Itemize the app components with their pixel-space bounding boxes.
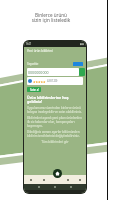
button[interactable]: Nav 3	[62, 175, 74, 184]
staticText: ★★★★★	[33, 80, 46, 83]
button[interactable]: Nav 2	[50, 175, 62, 184]
staticText: 9:41	[26, 42, 32, 46]
button[interactable]: Nav 1	[37, 175, 50, 184]
staticText: 0000000000	[28, 70, 49, 75]
button[interactable]: Home	[53, 169, 62, 178]
staticText: Uygulamamız üzerinden binlerce ürünü kol…	[27, 106, 83, 114]
staticText: Yeni ürün bildirimi	[27, 49, 53, 53]
staticText: Ürün bildirimlerine hoş geldiniz!	[27, 95, 69, 104]
staticText: Bildirimleri açarak yeni çıkan ürünlerde…	[27, 116, 83, 128]
staticText: Binlerce ürünü sizin için listeledik	[29, 12, 73, 24]
staticText: Dilediğiniz zaman ayarlar bölümünden bil…	[27, 130, 83, 138]
staticText: Tüm bildirimleri gör	[27, 140, 83, 144]
button[interactable]: Nav 0	[24, 175, 37, 184]
staticText: Satın al	[30, 88, 39, 92]
button[interactable]: Nav 4	[74, 175, 86, 184]
staticText: ▮▮▮	[80, 43, 84, 46]
staticText: Sepette	[27, 62, 39, 66]
staticText: 4.8 (120)	[47, 79, 58, 83]
